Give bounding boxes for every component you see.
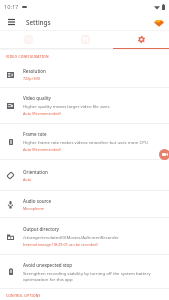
staticText: Frame rate (23, 131, 47, 137)
staticText: Microphone (23, 206, 44, 211)
staticText: Auto (Recommended) (23, 111, 61, 116)
button[interactable]: Premium (152, 16, 165, 29)
staticText: CONTROL OPTIONS (6, 293, 41, 297)
button[interactable]: Settings (113, 31, 169, 48)
button[interactable]: Menu (4, 15, 18, 29)
button[interactable]: Avoid unexpected stop (0, 255, 169, 289)
button[interactable]: Output directory (0, 218, 169, 255)
staticText: Auto (23, 177, 32, 182)
button[interactable]: Resolution (0, 62, 169, 88)
staticText: 720p (HD) (23, 76, 41, 81)
staticText: Auto (Recommended) (23, 147, 61, 152)
button[interactable]: Video recorder (0, 31, 57, 48)
staticText: Video quality (23, 95, 51, 101)
staticText: Output directory (23, 226, 59, 232)
staticText: Resolution (23, 68, 46, 74)
staticText: /storage/emulated/0/Movies/AzScreenRecor… (23, 234, 119, 240)
staticText: VIDEO CONFIGURATION (6, 54, 49, 58)
staticText: Higher frame rate makes videos smoother … (23, 139, 149, 145)
staticText: Audio source (23, 198, 52, 204)
button[interactable]: Screenshot (57, 31, 113, 48)
staticText: 10:17 (4, 3, 19, 11)
staticText: Orientation (23, 169, 48, 175)
button[interactable]: Frame rate (0, 124, 169, 160)
staticText: Internal storage (18:29:07 can be record… (23, 242, 98, 247)
button[interactable]: Video quality (0, 88, 169, 124)
staticText: Avoid unexpected stop (23, 262, 73, 268)
staticText: Settings (26, 18, 51, 27)
button[interactable]: Record (159, 149, 169, 160)
button[interactable]: Audio source (0, 191, 169, 218)
staticText: Higher quality means larger video file s… (23, 103, 110, 109)
button[interactable]: Orientation (0, 160, 169, 191)
staticText: Strengthen recording stability by turnin… (23, 270, 163, 282)
